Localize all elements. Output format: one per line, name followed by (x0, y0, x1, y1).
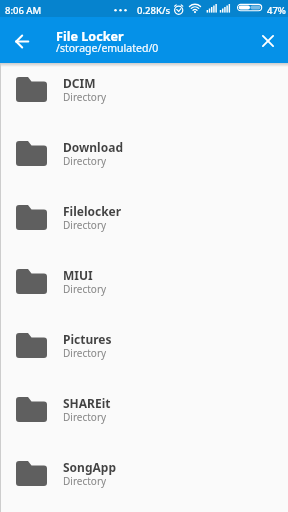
button[interactable]: DCIM (0, 63, 288, 127)
staticText: Filelocker (63, 203, 122, 219)
staticText: Directory (63, 346, 107, 360)
staticText: SongApp (63, 459, 116, 475)
staticText: 47% (267, 4, 286, 17)
staticText: 8:06 AM (5, 4, 42, 17)
button[interactable] (253, 26, 283, 56)
staticText: Directory (63, 154, 107, 168)
button[interactable]: Filelocker (0, 191, 288, 255)
button[interactable]: SHAREit (0, 383, 288, 447)
staticText: Pictures (63, 331, 112, 347)
staticText: Directory (63, 474, 107, 488)
staticText: 0.28K/s (137, 4, 171, 17)
staticText: SHAREit (63, 395, 111, 411)
button[interactable]: SongApp (0, 447, 288, 511)
staticText: Directory (63, 410, 107, 424)
staticText: Directory (63, 90, 107, 104)
staticText: Directory (63, 282, 107, 296)
staticText: File Locker (56, 28, 124, 45)
staticText: Directory (63, 218, 107, 232)
button[interactable]: Download (0, 127, 288, 191)
button[interactable]: Pictures (0, 319, 288, 383)
staticText: /storage/emulated/0 (56, 41, 159, 55)
staticText: DCIM (63, 75, 96, 91)
button[interactable]: MIUI (0, 255, 288, 319)
staticText: MIUI (63, 267, 93, 283)
button[interactable] (7, 26, 37, 56)
staticText: Download (63, 139, 123, 155)
